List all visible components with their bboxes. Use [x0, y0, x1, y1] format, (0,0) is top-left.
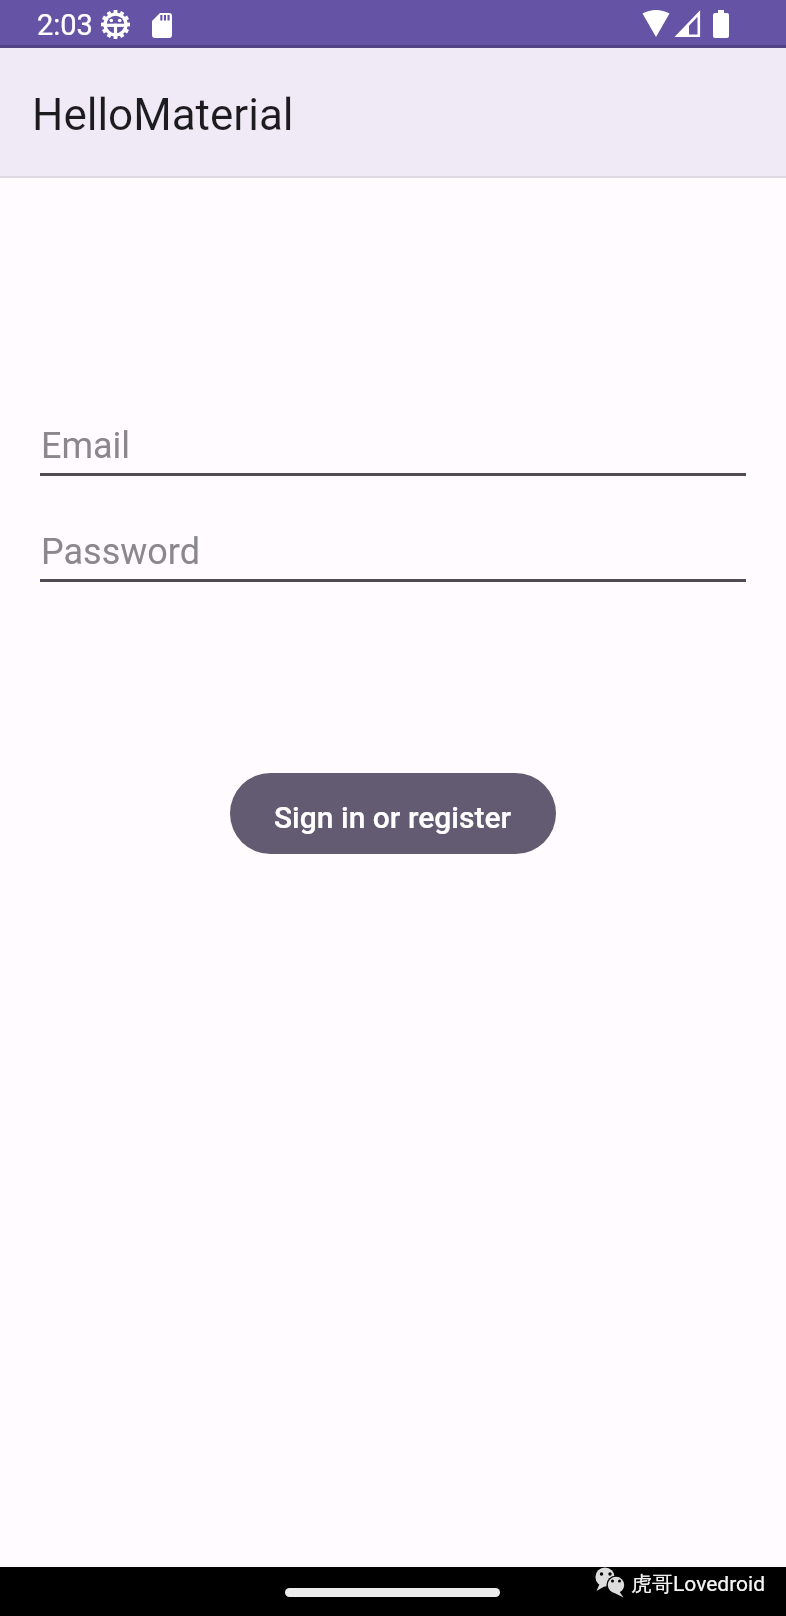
staticText: Sign in or register — [274, 800, 512, 835]
button[interactable]: Password — [40, 522, 746, 582]
button[interactable]: Email — [40, 416, 746, 476]
staticText: 虎哥Lovedroid — [631, 1571, 765, 1597]
staticText: 2:03 — [37, 8, 93, 42]
staticText: Password — [41, 531, 201, 573]
staticText: Email — [41, 425, 131, 467]
button[interactable]: Sign in or register — [230, 773, 556, 854]
staticText: HelloMaterial — [32, 89, 294, 141]
